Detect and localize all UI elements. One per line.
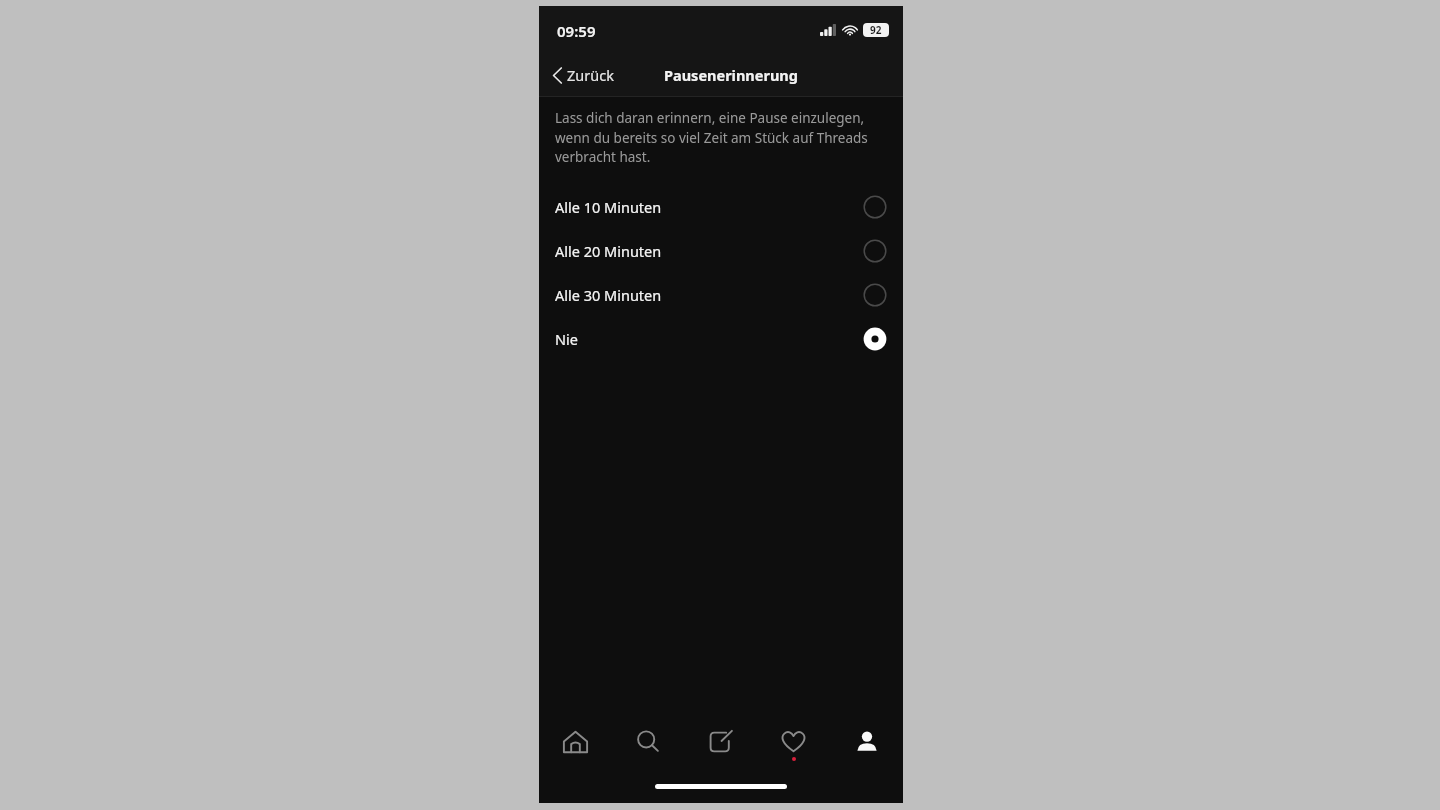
staticText: Alle 30 Minuten — [555, 285, 863, 305]
staticText: Alle 20 Minuten — [555, 241, 863, 261]
button[interactable]: Alle 10 Minuten — [539, 185, 903, 229]
button[interactable]: Activity — [757, 713, 830, 777]
button[interactable]: Alle 20 Minuten — [539, 229, 903, 273]
button[interactable]: Profile — [830, 713, 903, 777]
staticText: Alle 10 Minuten — [555, 197, 863, 217]
button[interactable]: Zurück — [539, 59, 624, 91]
button[interactable]: Home — [539, 713, 611, 777]
staticText: Lass dich daran erinnern, eine Pause ein… — [555, 109, 887, 166]
staticText: Zurück — [567, 65, 614, 85]
staticText: 92 — [870, 23, 882, 37]
button[interactable]: Search — [611, 713, 684, 777]
button[interactable]: Nie — [539, 317, 903, 361]
button[interactable]: Alle 30 Minuten — [539, 273, 903, 317]
button[interactable]: Compose — [684, 713, 757, 777]
staticText: Pausenerinnerung — [664, 65, 798, 85]
staticText: 09:59 — [557, 21, 596, 41]
staticText: Nie — [555, 329, 863, 349]
